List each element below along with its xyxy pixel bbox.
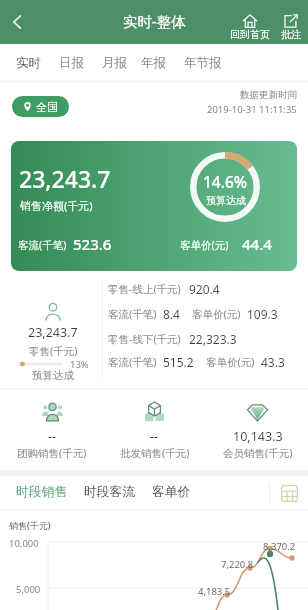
staticText: 时段客流: [84, 484, 136, 500]
staticText: 时段销售: [16, 484, 68, 500]
staticText: 2019-10-31 11:11:35: [207, 103, 297, 116]
staticText: 年报: [141, 55, 166, 71]
staticText: 预算达成: [32, 369, 74, 382]
staticText: 8,370.2: [263, 540, 296, 553]
button[interactable]: 日报: [50, 44, 93, 82]
staticText: 零售-线上(千元): [108, 282, 181, 296]
button[interactable]: --: [1, 401, 103, 460]
staticText: 数据更新时间: [240, 89, 297, 101]
staticText: 920.4: [189, 281, 220, 297]
staticText: 23,243.7: [28, 324, 78, 341]
staticText: 实时-整体: [123, 11, 186, 31]
staticText: 10,143.3: [233, 428, 283, 445]
button[interactable]: 回到首页: [230, 0, 270, 44]
staticText: 10,000: [9, 537, 39, 550]
staticText: 零售(千元): [29, 344, 78, 358]
staticText: 22,323.3: [189, 331, 237, 347]
staticText: 全国: [36, 100, 58, 114]
button[interactable]: --: [103, 401, 206, 460]
staticText: 会员销售(千元): [223, 446, 293, 460]
button[interactable]: 时段销售: [8, 476, 76, 510]
staticText: 批发销售(千元): [120, 446, 190, 460]
button[interactable]: 年节报: [175, 44, 231, 82]
staticText: 客单价(元): [192, 307, 241, 321]
staticText: --: [48, 428, 57, 445]
staticText: 月报: [102, 55, 127, 71]
staticText: 客流(千笔): [108, 307, 157, 321]
button[interactable]: Table view: [270, 476, 308, 510]
staticText: 预算达成: [206, 194, 246, 207]
staticText: 109.3: [247, 306, 278, 322]
button[interactable]: 月报: [93, 44, 136, 82]
staticText: 团购销售(千元): [17, 446, 87, 460]
staticText: 客流(千笔): [18, 238, 67, 252]
staticText: 销售净额(千元): [20, 198, 93, 213]
button[interactable]: 客单价: [144, 476, 199, 510]
staticText: 实时: [16, 55, 41, 71]
staticText: 13%: [70, 358, 89, 369]
staticText: 客流(千笔): [108, 355, 157, 369]
button[interactable]: 10,143.3: [206, 401, 308, 460]
staticText: 回到首页: [230, 28, 270, 41]
button[interactable]: 时段客流: [76, 476, 144, 510]
button[interactable]: 批注: [274, 0, 308, 44]
staticText: 零售-线下(千元): [108, 332, 181, 346]
button[interactable]: 实时: [7, 44, 50, 82]
staticText: 日报: [59, 55, 84, 71]
staticText: 销售(千元): [9, 519, 51, 531]
staticText: 23,243.7: [19, 163, 111, 194]
staticText: 7,220.8: [221, 558, 254, 571]
staticText: 14.6%: [203, 171, 248, 192]
staticText: --: [150, 428, 159, 445]
staticText: 515.2: [163, 354, 194, 370]
staticText: 客单价(元): [206, 355, 255, 369]
staticText: 523.6: [73, 234, 112, 254]
staticText: 43.3: [261, 354, 285, 370]
staticText: 年节报: [184, 55, 222, 71]
button[interactable]: Back: [0, 5, 34, 39]
staticText: 批注: [281, 28, 301, 41]
button[interactable]: 年报: [132, 44, 175, 82]
staticText: 客单价: [152, 484, 191, 500]
staticText: 客单价(元): [180, 238, 229, 252]
staticText: 44.4: [242, 234, 272, 254]
staticText: 4,183.5: [198, 585, 231, 598]
staticText: 8.4: [163, 306, 180, 322]
staticText: 5,000: [16, 583, 41, 596]
button[interactable]: 全国: [12, 96, 69, 117]
